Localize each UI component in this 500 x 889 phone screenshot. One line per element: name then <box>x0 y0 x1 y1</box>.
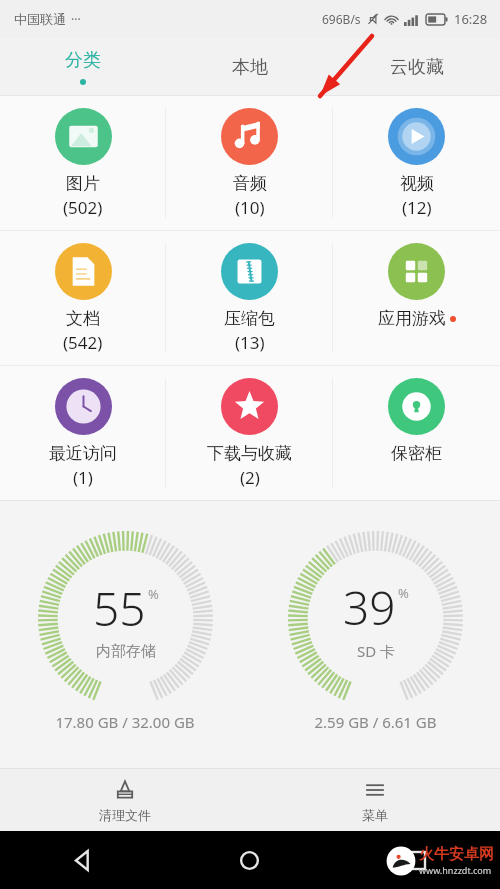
staticText: (10) <box>235 196 265 219</box>
button[interactable]: 本地 <box>166 38 333 96</box>
staticText: (13) <box>235 331 265 354</box>
staticText: 下载与收藏 <box>207 443 292 464</box>
staticText: SD 卡 <box>357 641 396 661</box>
staticText: 2.59 GB / 6.61 GB <box>314 712 437 732</box>
button[interactable]: Back <box>0 831 166 889</box>
staticText: 17.80 GB / 32.00 GB <box>55 712 195 732</box>
staticText: 39 <box>343 576 396 639</box>
staticText: 最近访问 <box>49 443 117 464</box>
staticText: 压缩包 <box>224 308 275 329</box>
button[interactable]: 图片 <box>0 96 166 230</box>
button[interactable]: 音频 <box>166 96 333 230</box>
staticText: 保密柜 <box>391 443 442 464</box>
button[interactable]: 分类 <box>0 38 166 96</box>
staticText: 内部存储 <box>96 642 156 661</box>
button[interactable]: Recents <box>333 831 500 889</box>
staticText: 菜单 <box>362 807 388 823</box>
button[interactable]: 保密柜 <box>333 366 500 500</box>
staticText: 音频 <box>233 173 267 194</box>
button[interactable]: 视频 <box>333 96 500 230</box>
staticText: (502) <box>63 196 103 219</box>
staticText: 云收藏 <box>390 56 444 79</box>
staticText: 应用游戏 <box>378 308 446 329</box>
staticText: 16:28 <box>454 10 488 28</box>
staticText: (12) <box>402 196 432 219</box>
button[interactable]: 清理文件 <box>0 769 250 831</box>
button[interactable]: 最近访问 <box>0 366 166 500</box>
staticText: 696B/s <box>322 11 361 27</box>
button[interactable]: 压缩包 <box>166 231 333 365</box>
staticText: 55 <box>93 577 146 640</box>
staticText: www.hnzzdt.com <box>419 864 492 876</box>
button[interactable]: 应用游戏 <box>333 231 500 365</box>
button[interactable]: 文档 <box>0 231 166 365</box>
staticText: 文档 <box>66 308 100 329</box>
staticText: (542) <box>63 331 103 354</box>
staticText: 中国联通 <box>14 11 66 27</box>
staticText: (1) <box>73 466 93 489</box>
button[interactable]: 云收藏 <box>333 38 500 96</box>
staticText: ··· <box>71 11 81 27</box>
staticText: 分类 <box>65 49 101 72</box>
staticText: 图片 <box>66 173 100 194</box>
staticText: (2) <box>240 466 260 489</box>
button[interactable]: Home <box>166 831 333 889</box>
staticText: 本地 <box>232 56 268 79</box>
button[interactable]: 下载与收藏 <box>166 366 333 500</box>
staticText: 清理文件 <box>99 807 151 823</box>
staticText: % <box>148 585 159 603</box>
button[interactable]: 菜单 <box>250 769 500 831</box>
staticText: 视频 <box>400 173 434 194</box>
staticText: 火牛安卓网 <box>419 845 494 864</box>
staticText: % <box>398 584 409 602</box>
